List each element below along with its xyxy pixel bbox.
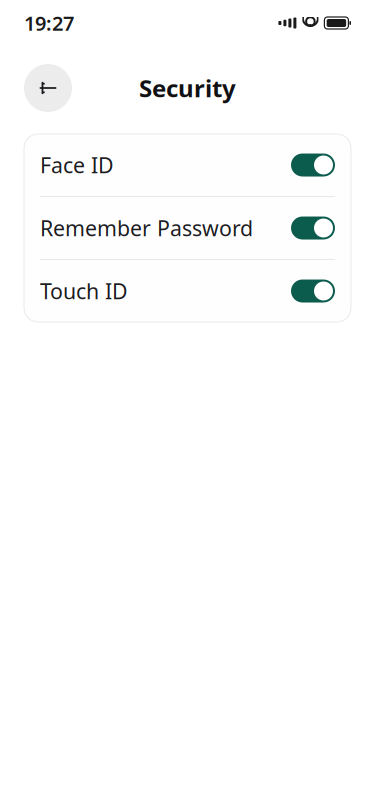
staticText: Security: [139, 72, 236, 104]
button[interactable]: Back: [24, 64, 72, 112]
staticText: Touch ID: [40, 277, 128, 305]
staticText: Face ID: [40, 151, 114, 179]
staticText: Remember Password: [40, 214, 253, 242]
button[interactable]: Face ID: [24, 134, 351, 196]
button[interactable]: Touch ID: [24, 260, 351, 322]
button[interactable]: Remember Password: [24, 197, 351, 259]
staticText: 19:27: [24, 10, 74, 36]
